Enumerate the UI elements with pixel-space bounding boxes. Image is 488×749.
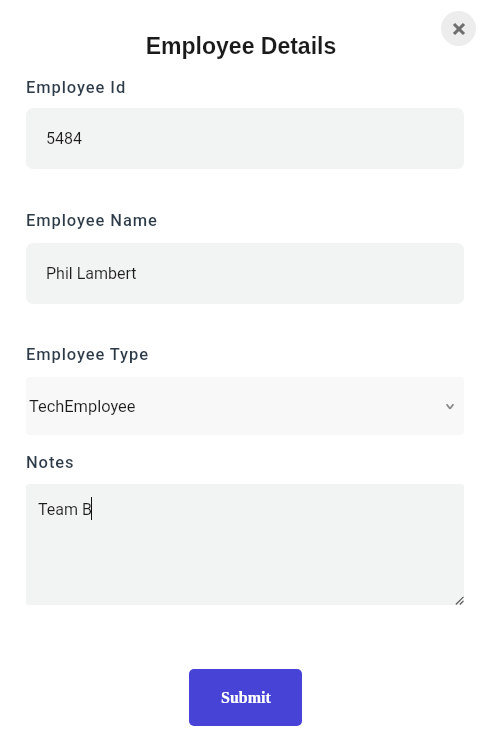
button[interactable]: TechEmployee: [26, 377, 464, 435]
button[interactable]: Phil Lambert: [26, 243, 464, 304]
staticText: Employee Details: [0, 33, 485, 59]
button[interactable]: 5484: [26, 108, 464, 169]
staticText: Notes: [26, 453, 75, 472]
staticText: Employee Type: [26, 345, 149, 364]
staticText: Submit: [221, 689, 271, 707]
staticText: Phil Lambert: [46, 264, 137, 283]
staticText: Employee Id: [26, 78, 127, 97]
staticText: Employee Name: [26, 211, 158, 230]
staticText: Team B: [38, 500, 92, 519]
button[interactable]: Close: [441, 11, 476, 46]
button[interactable]: Submit: [189, 669, 302, 726]
staticText: TechEmployee: [29, 397, 136, 416]
button[interactable]: Team B: [26, 484, 464, 605]
staticText: 5484: [46, 129, 82, 148]
